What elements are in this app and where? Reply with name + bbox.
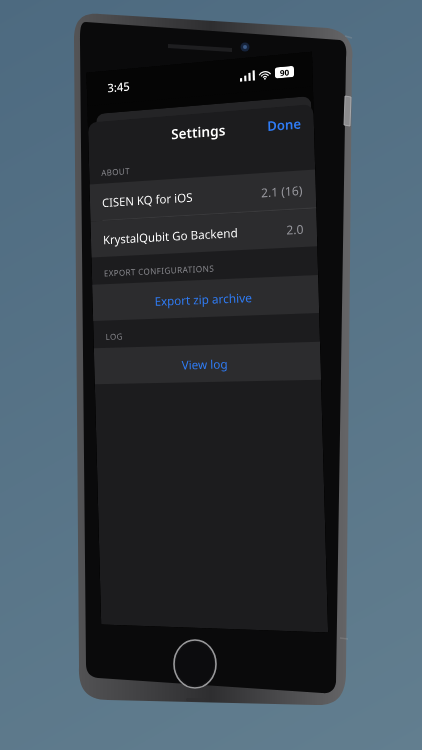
staticText: View log <box>181 355 228 372</box>
staticText: 2.1 (16) <box>261 182 303 200</box>
staticText: 2.0 <box>286 220 304 238</box>
staticText: Done <box>267 114 302 135</box>
staticText: 3:45 <box>107 78 130 95</box>
staticText: ABOUT <box>101 165 130 179</box>
button[interactable]: Done <box>255 105 314 144</box>
staticText: 90 <box>280 66 290 78</box>
staticText: Export zip archive <box>154 289 252 309</box>
staticText: Settings <box>171 120 226 143</box>
button[interactable]: Export zip archive <box>92 275 319 321</box>
staticText: LOG <box>105 331 124 343</box>
staticText: CISEN KQ for iOS <box>102 189 193 210</box>
button[interactable]: CISEN KQ for iOS <box>89 169 316 222</box>
button[interactable]: KrystalQubit Go Backend <box>90 208 317 258</box>
staticText: EXPORT CONFIGURATIONS <box>104 262 215 279</box>
staticText: KrystalQubit Go Backend <box>103 224 238 247</box>
button[interactable]: View log <box>94 342 321 384</box>
